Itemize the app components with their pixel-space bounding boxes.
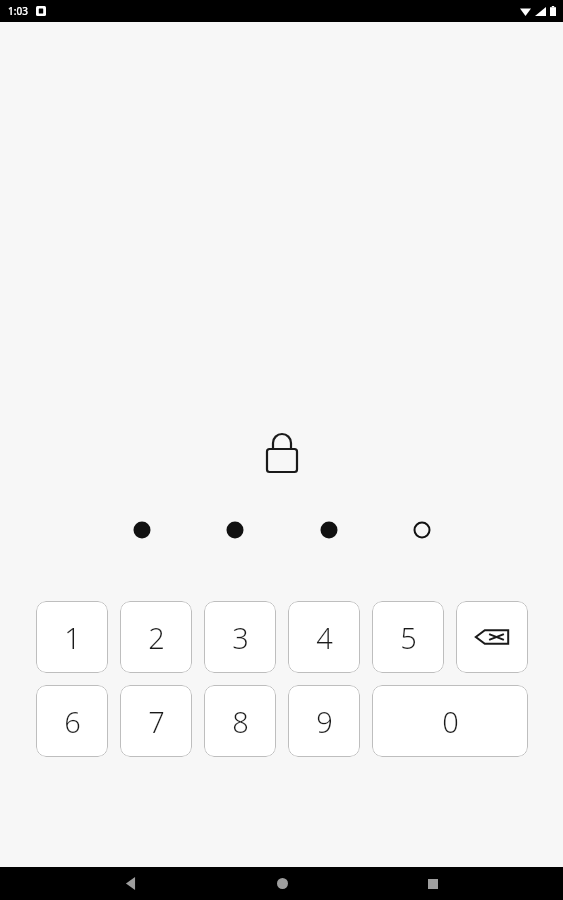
button[interactable]: 2 xyxy=(120,601,192,673)
button[interactable]: 0 xyxy=(372,685,528,757)
staticText: 2 xyxy=(148,618,165,657)
button[interactable]: 1 xyxy=(36,601,108,673)
button[interactable]: 5 xyxy=(372,601,444,673)
staticText: 9 xyxy=(316,702,333,741)
button[interactable]: 8 xyxy=(204,685,276,757)
button[interactable]: 9 xyxy=(288,685,360,757)
button[interactable]: 7 xyxy=(120,685,192,757)
staticText: 0 xyxy=(442,702,459,741)
staticText: 7 xyxy=(148,702,165,741)
button[interactable]: Backspace xyxy=(456,601,528,673)
button[interactable]: 6 xyxy=(36,685,108,757)
button[interactable]: Recent apps xyxy=(411,867,455,900)
button[interactable]: Home xyxy=(260,867,304,900)
staticText: 8 xyxy=(232,702,249,741)
staticText: 4 xyxy=(316,618,333,657)
staticText: 5 xyxy=(400,618,417,657)
button[interactable]: Back xyxy=(108,867,152,900)
staticText: 1:03 xyxy=(8,4,28,18)
staticText: 6 xyxy=(64,702,81,741)
button[interactable]: 4 xyxy=(288,601,360,673)
staticText: 1 xyxy=(64,618,81,657)
button[interactable]: 3 xyxy=(204,601,276,673)
staticText: 3 xyxy=(232,618,249,657)
